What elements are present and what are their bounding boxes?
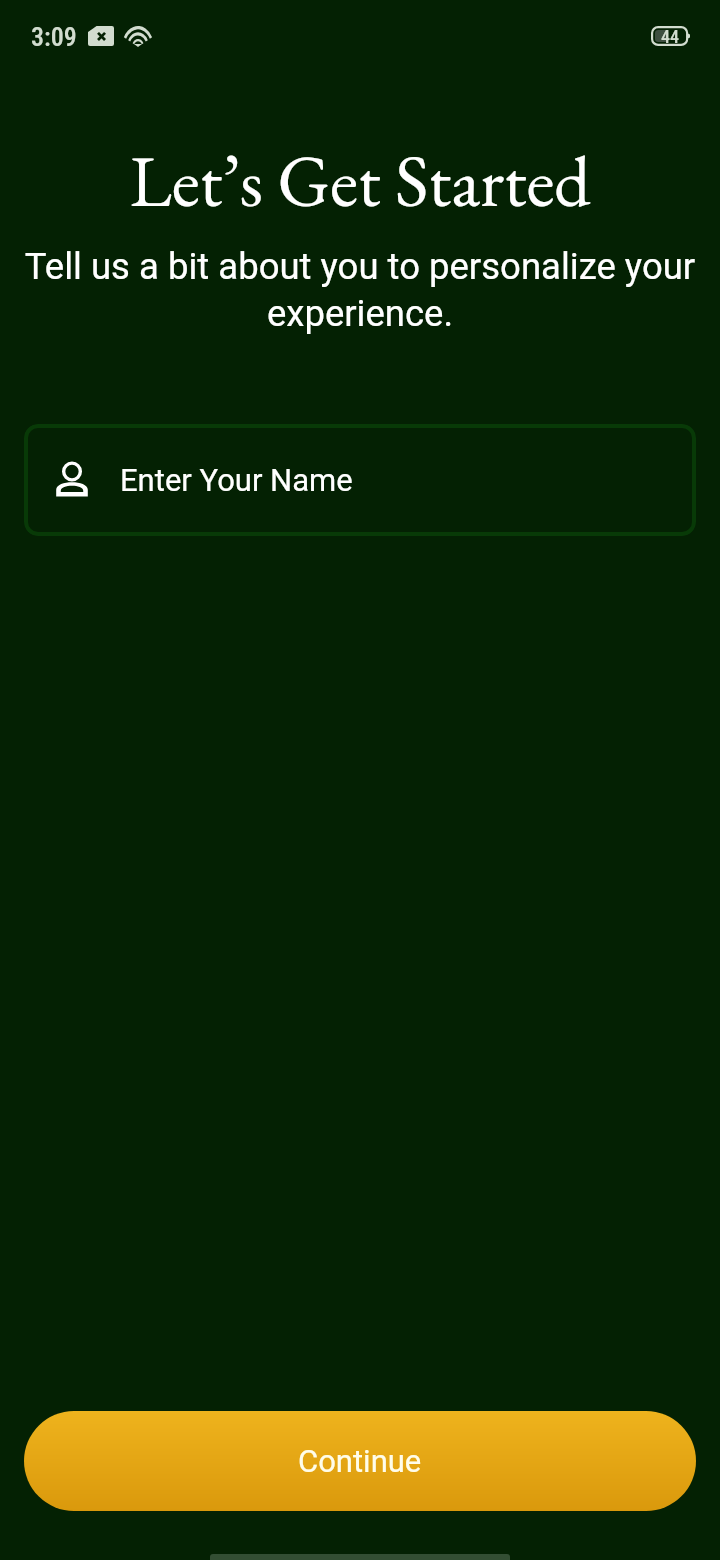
button[interactable]: Continue xyxy=(24,1411,696,1511)
staticText: Tell us a bit about you to personalize y… xyxy=(16,245,704,335)
other: Wi-Fi xyxy=(122,26,154,47)
staticText: Continue xyxy=(298,1443,422,1479)
other: No SIM card xyxy=(88,26,114,46)
button[interactable]: Person xyxy=(24,424,696,536)
staticText: Let’s Get Started xyxy=(0,133,720,227)
other: Person xyxy=(55,463,89,497)
staticText: 44 xyxy=(661,26,680,46)
staticText: 3:09 xyxy=(31,22,77,52)
staticText: Enter Your Name xyxy=(120,462,353,498)
